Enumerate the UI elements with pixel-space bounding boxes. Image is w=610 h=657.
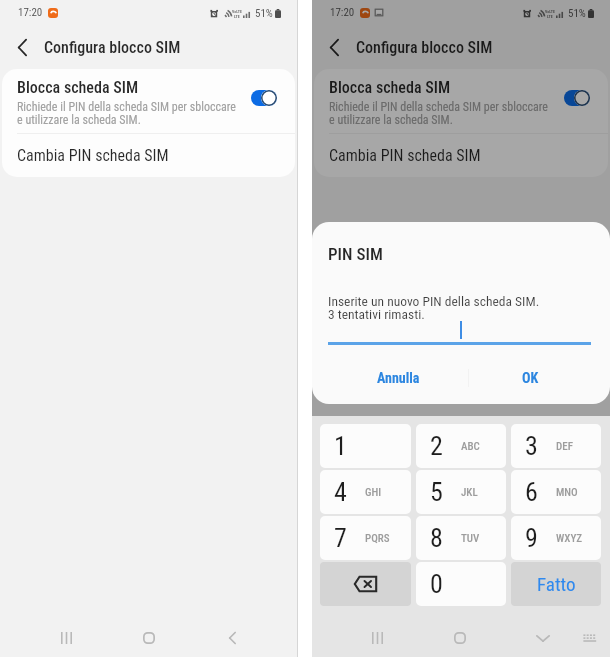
staticText: Richiede il PIN della scheda SIM per sbl… [329, 100, 548, 127]
staticText: Configura blocco SIM [44, 38, 181, 57]
button[interactable]: Fatto [511, 562, 601, 606]
button[interactable]: 0 [416, 562, 506, 606]
button[interactable]: 9 [511, 516, 601, 560]
button[interactable]: Annulla [328, 361, 468, 395]
staticText: TUV [461, 532, 480, 545]
staticText: 6 [525, 477, 538, 507]
button[interactable]: Recent apps [50, 622, 82, 654]
button[interactable]: 6 [511, 470, 601, 514]
staticText: 51% [255, 7, 273, 20]
staticText: WXYZ [556, 532, 583, 545]
staticText: 8 [430, 523, 443, 553]
staticText: 17:20 [18, 6, 43, 19]
button[interactable]: 3 [511, 424, 601, 468]
staticText: 4 [334, 477, 347, 507]
staticText: Cambia PIN scheda SIM [329, 146, 481, 165]
staticText: 0 [430, 569, 443, 599]
staticText: 7 [334, 523, 347, 553]
staticText: ABC [461, 440, 480, 453]
button[interactable]: 7 [320, 516, 411, 560]
staticText: LTE [234, 14, 240, 19]
staticText: JKL [461, 486, 478, 499]
button[interactable]: Cambia PIN scheda SIM [314, 134, 608, 177]
staticText: Inserite un nuovo PIN della scheda SIM. … [328, 293, 540, 322]
button[interactable]: 4 [320, 470, 411, 514]
staticText: Annulla [377, 370, 420, 386]
button[interactable]: Change keyboard [574, 622, 606, 654]
staticText: Cambia PIN scheda SIM [17, 146, 169, 165]
staticText: Configura blocco SIM [356, 38, 493, 57]
staticText: Blocca scheda SIM [329, 78, 451, 97]
button[interactable]: 8 [416, 516, 506, 560]
staticText: OK [522, 370, 539, 386]
staticText: 2 [430, 431, 443, 461]
staticText: Richiede il PIN della scheda SIM per sbl… [17, 100, 236, 127]
button[interactable]: Home [444, 622, 476, 654]
button[interactable]: Recent apps [361, 622, 393, 654]
staticText: 1 [334, 431, 347, 461]
button[interactable]: Backspace [320, 562, 411, 606]
staticText: LTE [547, 14, 553, 19]
staticText: Fatto [537, 573, 576, 595]
button[interactable]: Back [0, 26, 44, 69]
button[interactable]: Home [133, 622, 165, 654]
button[interactable]: Blocca scheda SIM [314, 69, 608, 133]
button[interactable]: 1 [320, 424, 411, 468]
staticText: VoLTE [232, 9, 242, 14]
staticText: MNO [556, 486, 578, 499]
staticText: Blocca scheda SIM [17, 78, 139, 97]
button[interactable]: 2 [416, 424, 506, 468]
button[interactable]: Hide keyboard [527, 622, 559, 654]
staticText: VoLTE [545, 9, 555, 14]
staticText: 17:20 [330, 6, 355, 19]
button[interactable]: Back [216, 622, 248, 654]
staticText: PIN SIM [328, 244, 383, 264]
staticText: 9 [525, 523, 538, 553]
staticText: 51% [568, 7, 586, 20]
staticText: 3 [525, 431, 538, 461]
button[interactable]: OK [469, 361, 591, 395]
staticText: PQRS [365, 532, 390, 545]
staticText: 5 [430, 477, 443, 507]
button[interactable]: 5 [416, 470, 506, 514]
button[interactable]: Cambia PIN scheda SIM [2, 134, 295, 177]
button[interactable]: Blocca scheda SIM [2, 69, 295, 133]
button[interactable]: Back [312, 26, 356, 69]
staticText: GHI [365, 486, 382, 499]
staticText: DEF [556, 440, 573, 453]
